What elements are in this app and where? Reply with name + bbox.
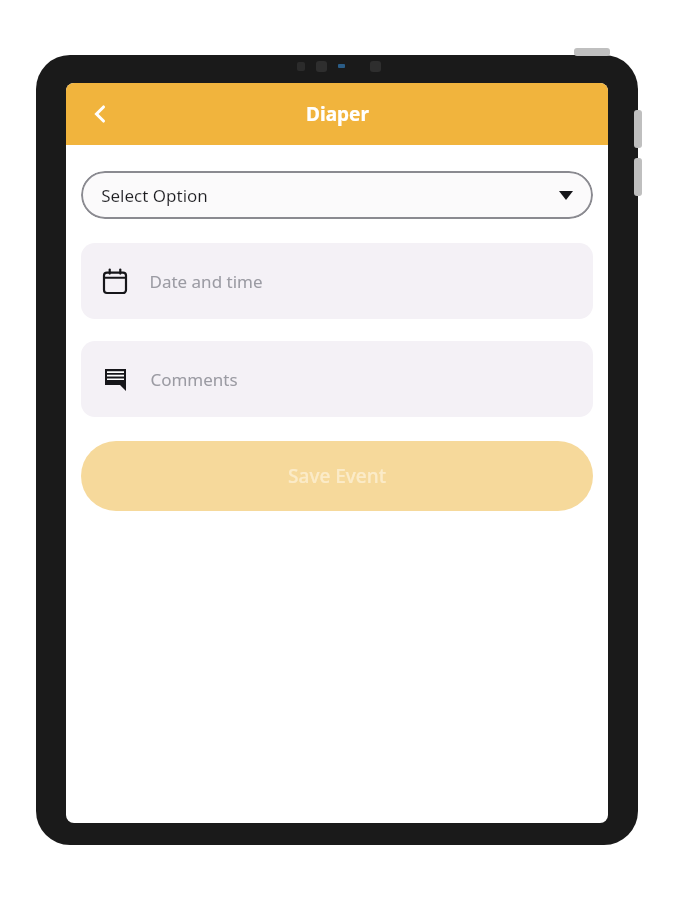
staticText: Save Event	[288, 463, 386, 489]
button[interactable]: Date and time	[81, 243, 593, 319]
button[interactable]: Save Event	[81, 441, 593, 511]
button[interactable]: Back	[78, 92, 122, 136]
staticText: Comments	[150, 368, 238, 391]
staticText: Date and time	[149, 270, 263, 293]
button[interactable]: Select Option	[81, 171, 593, 219]
staticText: Select Option	[101, 184, 208, 207]
button[interactable]: Comments	[81, 341, 593, 417]
staticText: Diaper	[306, 101, 369, 127]
